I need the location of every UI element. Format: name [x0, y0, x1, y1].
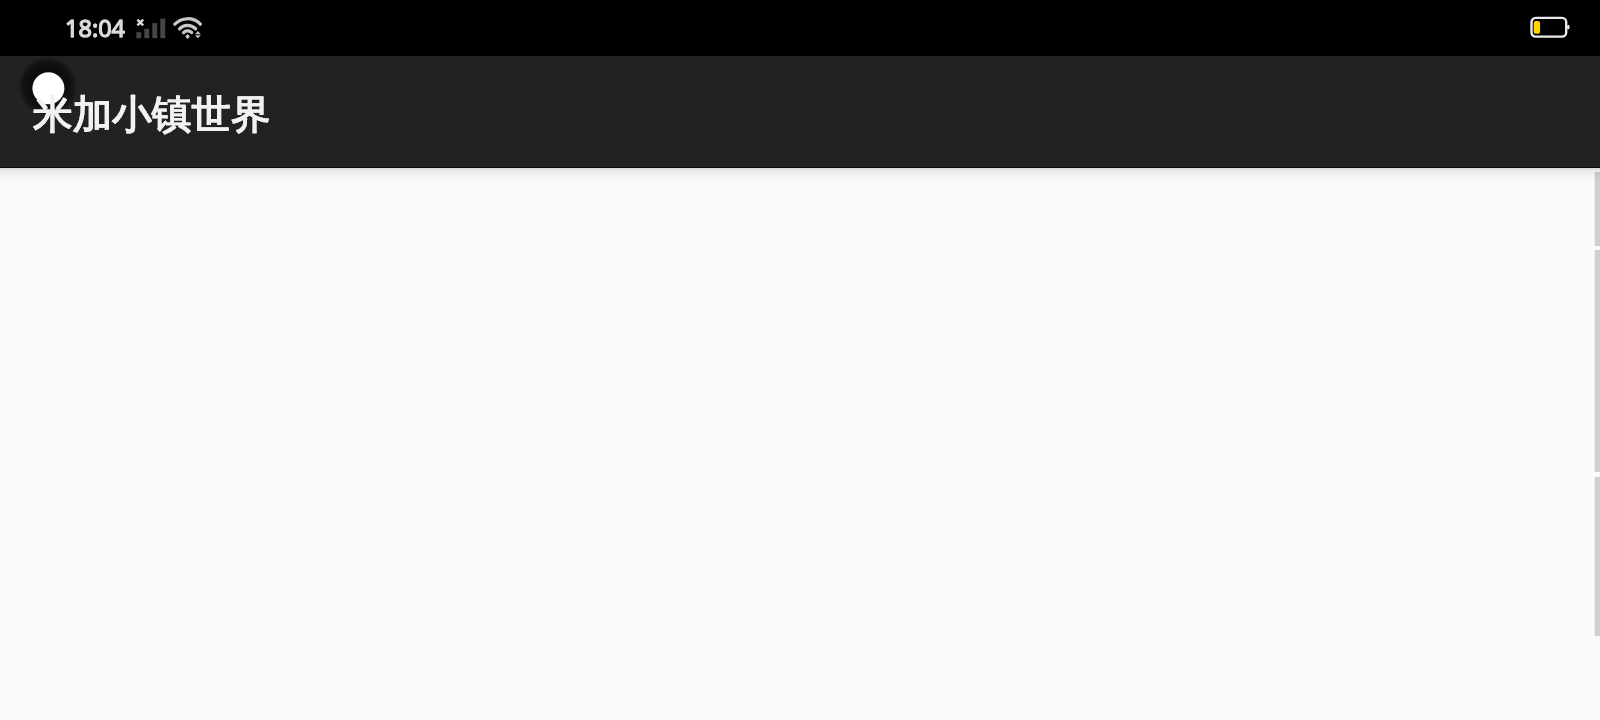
button[interactable]: 米加小镇世界: [33, 88, 271, 140]
staticText: 米加小镇世界: [33, 90, 271, 140]
staticText: 18:04: [65, 12, 126, 44]
staticText: 18:04: [65, 12, 126, 44]
staticText: 米加小镇世界: [33, 90, 271, 140]
button[interactable]: App icon: [18, 56, 78, 116]
